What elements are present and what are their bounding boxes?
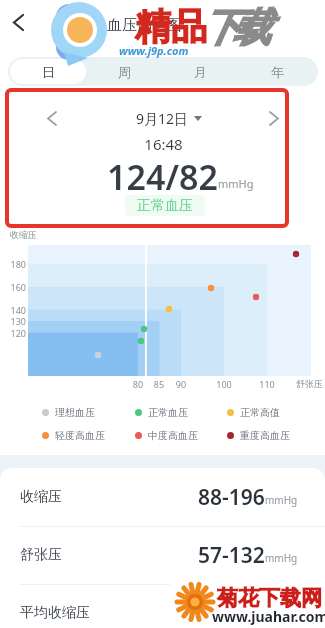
button[interactable]: 正常血压 <box>125 195 205 216</box>
staticText: 90 <box>166 378 196 390</box>
staticText: 130 <box>0 315 26 327</box>
staticText: 正常高值 <box>240 406 280 419</box>
staticText: 下载 <box>205 3 267 52</box>
staticText: 轻度高血压 <box>55 429 105 442</box>
button[interactable]: 收缩压 <box>0 468 325 526</box>
staticText: 100 <box>209 378 239 390</box>
button[interactable]: 年 <box>239 59 316 84</box>
staticText: 88-196 <box>198 483 265 512</box>
staticText: 57-132 <box>198 541 265 570</box>
staticText: 菊花下载网 <box>217 585 322 611</box>
staticText: 120 <box>0 327 26 339</box>
button[interactable]: 日 <box>10 59 86 84</box>
staticText: 舒张压 <box>20 546 62 564</box>
button[interactable]: 舒张压 <box>0 526 325 584</box>
staticText: 日 <box>42 64 55 80</box>
staticText: 9月12日 <box>136 109 189 128</box>
staticText: 180 <box>0 258 26 270</box>
staticText: 110 <box>252 378 282 390</box>
button[interactable] <box>40 106 64 130</box>
staticText: www.juahar.com <box>212 607 325 626</box>
staticText: mmHg <box>265 493 298 507</box>
staticText: 中度高血压 <box>148 429 198 442</box>
staticText: mmHg <box>218 176 254 191</box>
staticText: 140 <box>0 304 26 316</box>
staticText: 收缩压 <box>10 229 37 240</box>
button[interactable]: 平均收缩压 <box>0 584 325 628</box>
staticText: 80 <box>123 378 153 390</box>
button[interactable]: 周 <box>86 59 162 84</box>
staticText: 重度高血压 <box>240 429 290 442</box>
staticText: 周 <box>118 64 131 80</box>
staticText: 舒张压 <box>296 378 323 389</box>
staticText: www.j9p.com <box>119 43 189 58</box>
staticText: 124/82 <box>0 154 325 200</box>
button[interactable] <box>3 7 33 37</box>
staticText: 平均收缩压 <box>20 604 90 622</box>
staticText: 收缩压 <box>20 488 62 506</box>
staticText: 精品 <box>135 4 207 49</box>
staticText: mmHg <box>265 551 298 565</box>
button[interactable] <box>262 106 286 130</box>
staticText: 正常血压 <box>148 406 188 419</box>
button[interactable]: 9月12日 <box>6 108 325 128</box>
staticText: 血压趋势图 <box>107 16 182 35</box>
staticText: 理想血压 <box>55 406 95 419</box>
staticText: mmHg <box>265 609 298 623</box>
staticText: 正常血压 <box>137 197 193 215</box>
staticText: 16:48 <box>1 134 325 154</box>
staticText: 124 <box>228 599 265 628</box>
staticText: 160 <box>0 281 26 293</box>
staticText: 年 <box>271 64 284 80</box>
staticText: 月 <box>194 64 207 80</box>
staticText: 85 <box>144 378 174 390</box>
button[interactable]: 月 <box>162 59 239 84</box>
